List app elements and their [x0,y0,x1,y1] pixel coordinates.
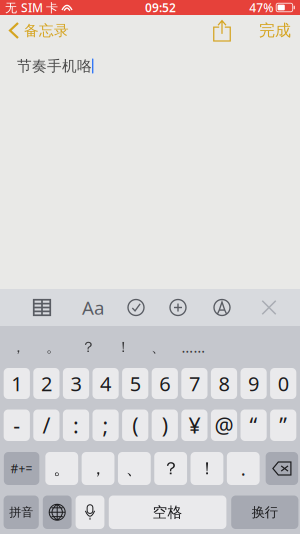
button[interactable]: 。 [36,332,71,362]
staticText: 4 [100,370,111,397]
staticText: ！ [198,458,215,479]
button[interactable]: 。 [45,452,78,485]
staticText: 完成 [259,21,291,40]
staticText: ) [162,411,168,439]
button[interactable]: 换行 [231,495,298,529]
staticText: ; [103,411,109,439]
button[interactable]: 空格 [109,495,226,529]
button[interactable]: Share [205,15,239,46]
staticText: ( [132,411,138,439]
button[interactable]: 拼音 [4,495,39,529]
button[interactable]: Next keyboard [43,495,72,529]
button[interactable]: : [63,409,89,441]
button[interactable]: 9 [240,368,267,399]
staticText: ， [89,458,106,479]
button[interactable]: 5 [122,368,148,399]
button[interactable]: ( [122,409,148,441]
button[interactable]: ！ [106,332,141,362]
staticText: @ [214,411,233,439]
button[interactable]: 7 [181,368,207,399]
button[interactable]: 、 [118,452,151,485]
button[interactable]: Text format [74,289,112,326]
staticText: 空格 [153,503,183,521]
button[interactable]: ？ [71,332,106,362]
staticText: 。 [46,338,61,356]
staticText: 备忘录 [24,21,69,39]
button[interactable]: 1 [4,368,30,399]
button[interactable]: . [227,452,260,485]
button[interactable]: ) [152,409,178,441]
staticText: “ [250,411,258,439]
staticText: 2 [41,370,52,397]
button[interactable]: - [4,409,30,441]
button[interactable]: ！ [190,452,223,485]
staticText: 8 [218,370,229,397]
staticText: ， [11,338,26,356]
staticText: …… [181,337,205,357]
staticText: #+= [11,460,33,476]
staticText: 1 [11,370,22,397]
staticText: 、 [151,338,166,356]
button[interactable]: ？ [154,452,187,485]
staticText: 3 [70,370,81,397]
staticText: Aa [82,295,104,320]
staticText: 47% [249,0,273,15]
button[interactable]: ” [270,409,296,441]
button[interactable]: 3 [63,368,89,399]
button[interactable]: ¥ [181,409,207,441]
staticText: 无 SIM 卡 [5,0,58,15]
button[interactable]: ; [92,409,119,441]
button[interactable]: Markup [203,289,241,326]
button[interactable]: 0 [270,368,296,399]
staticText: 。 [53,458,70,479]
staticText: 、 [126,458,143,479]
staticText: 0 [278,370,289,397]
staticText: . [241,456,246,481]
button[interactable]: Hide keyboard [250,289,288,326]
button[interactable]: …… [176,332,211,362]
button[interactable]: #+= [4,452,39,485]
staticText: ¥ [188,411,200,439]
button[interactable]: 8 [211,368,237,399]
staticText: - [13,411,20,439]
staticText: ！ [116,338,131,356]
button[interactable]: Add attachment [159,289,197,326]
staticText: 节奏手机咯 [17,57,92,75]
button[interactable]: 6 [152,368,178,399]
button[interactable]: 2 [33,368,59,399]
button[interactable]: 4 [92,368,119,399]
button[interactable]: / [33,409,59,441]
staticText: 5 [130,370,141,397]
staticText: 6 [159,370,170,397]
button[interactable]: Table [23,289,61,326]
staticText: 9 [248,370,259,397]
staticText: : [73,411,79,439]
staticText: ？ [81,338,96,356]
button[interactable]: ， [82,452,114,485]
button[interactable]: 、 [141,332,176,362]
button[interactable]: Checklist [117,289,155,326]
staticText: 7 [189,370,200,397]
staticText: 09:52 [145,0,176,15]
button[interactable]: Dictate [76,495,104,529]
staticText: ” [279,411,287,439]
button[interactable]: 备忘录 [0,15,75,46]
button[interactable]: Delete [266,452,298,485]
button[interactable]: 完成 [259,15,300,46]
button[interactable]: ， [1,332,36,362]
button[interactable]: @ [211,409,237,441]
staticText: / [42,411,50,439]
button[interactable]: “ [240,409,267,441]
staticText: 拼音 [9,505,33,520]
staticText: ？ [162,458,179,479]
staticText: 换行 [252,504,278,520]
